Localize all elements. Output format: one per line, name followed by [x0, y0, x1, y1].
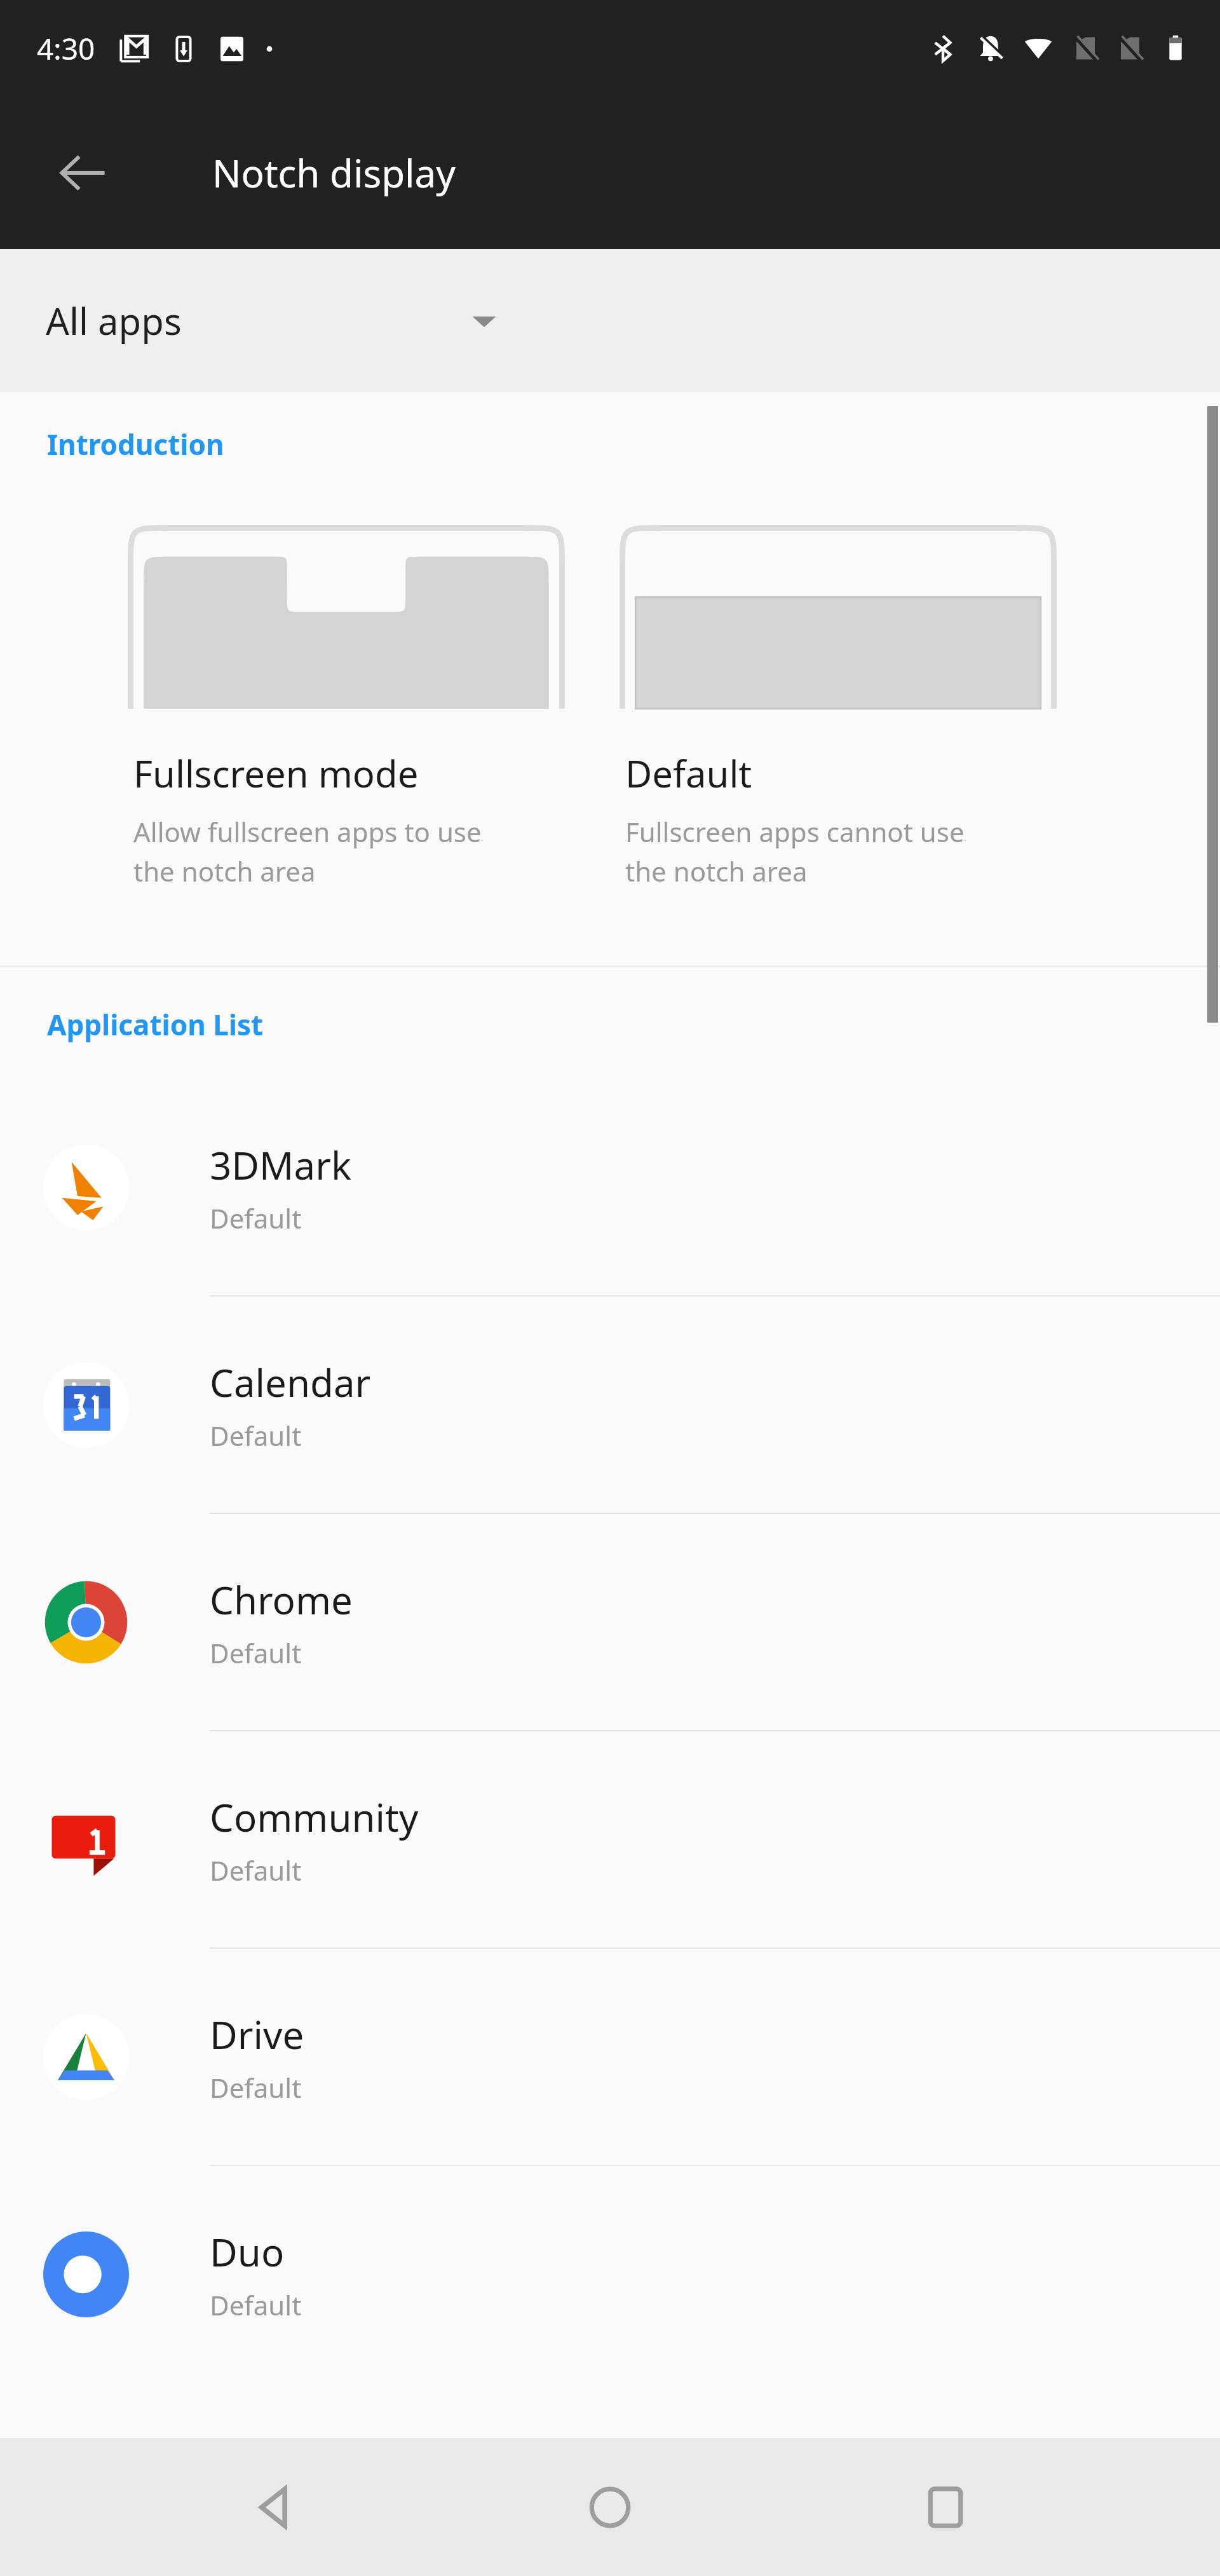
staticText: Fullscreen apps cannot use the notch are…	[625, 814, 965, 889]
staticText: Calendar	[210, 1356, 371, 1408]
staticText: Default	[210, 1852, 302, 1888]
button[interactable]: Back	[215, 2447, 335, 2568]
staticText: Introduction	[47, 425, 224, 463]
button[interactable]: Fullscreen mode	[0, 524, 610, 889]
staticText: Application List	[47, 1005, 264, 1044]
staticText: Default	[210, 1635, 302, 1671]
button[interactable]: Default	[610, 524, 1220, 889]
staticText: Default	[210, 1200, 302, 1236]
staticText: Fullscreen mode	[133, 748, 419, 798]
staticText: Drive	[210, 2008, 304, 2061]
button[interactable]: Duo	[0, 2166, 1220, 2382]
button[interactable]: Chrome	[0, 1514, 1220, 1730]
staticText: Allow fullscreen apps to use the notch a…	[133, 814, 482, 889]
button[interactable]: Home	[550, 2447, 670, 2568]
staticText: Community	[210, 1791, 419, 1843]
button[interactable]: All apps	[0, 249, 1220, 392]
staticText: Default	[210, 2287, 302, 2323]
staticText: Default	[210, 2069, 302, 2106]
button[interactable]: Calendar	[0, 1297, 1220, 1513]
button[interactable]: Community	[0, 1731, 1220, 1947]
button[interactable]: 3DMark	[0, 1079, 1220, 1295]
staticText: 3DMark	[210, 1139, 352, 1191]
button[interactable]: Drive	[0, 1949, 1220, 2165]
staticText: Chrome	[210, 1574, 353, 1626]
staticText: Duo	[210, 2226, 285, 2278]
staticText: Notch display	[212, 147, 456, 199]
staticText: All apps	[46, 296, 182, 346]
staticText: 4:30	[37, 29, 95, 69]
button[interactable]: Recent apps	[885, 2447, 1006, 2568]
staticText: Default	[625, 748, 752, 798]
staticText: Default	[210, 1417, 302, 1454]
button[interactable]: Back	[48, 138, 118, 208]
